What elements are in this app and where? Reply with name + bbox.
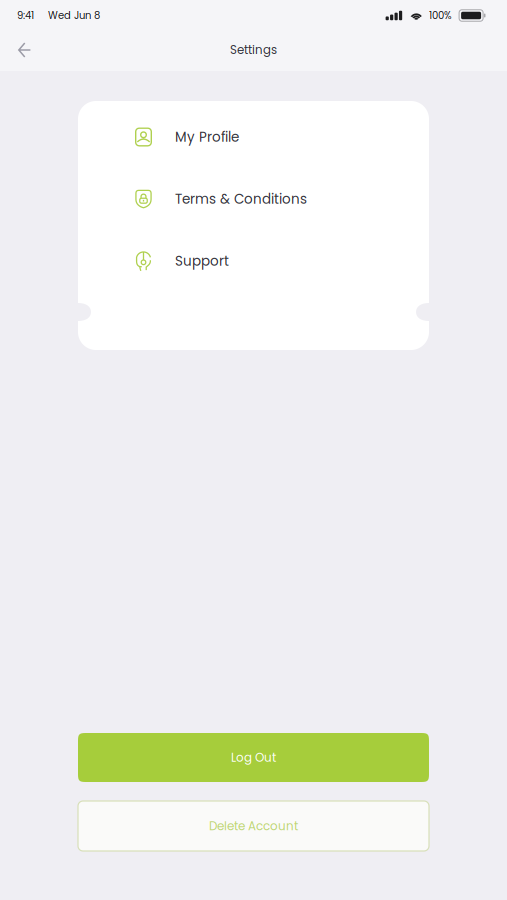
staticText: My Profile (175, 128, 239, 146)
staticText: Support (175, 252, 229, 270)
staticText: Log Out (231, 749, 276, 766)
button[interactable]: Log Out (78, 733, 429, 782)
button[interactable]: My Profile (78, 106, 429, 168)
staticText: Delete Account (209, 818, 298, 834)
button[interactable]: Delete Account (78, 801, 429, 851)
button[interactable]: Back (6, 31, 43, 69)
staticText: Settings (230, 42, 277, 58)
button[interactable]: Terms & Conditions (78, 168, 429, 230)
staticText: 100% (429, 8, 452, 22)
button[interactable]: Support (78, 230, 429, 292)
staticText: 9:41 (17, 8, 34, 22)
staticText: Wed Jun 8 (48, 8, 100, 22)
staticText: Terms & Conditions (175, 190, 307, 208)
